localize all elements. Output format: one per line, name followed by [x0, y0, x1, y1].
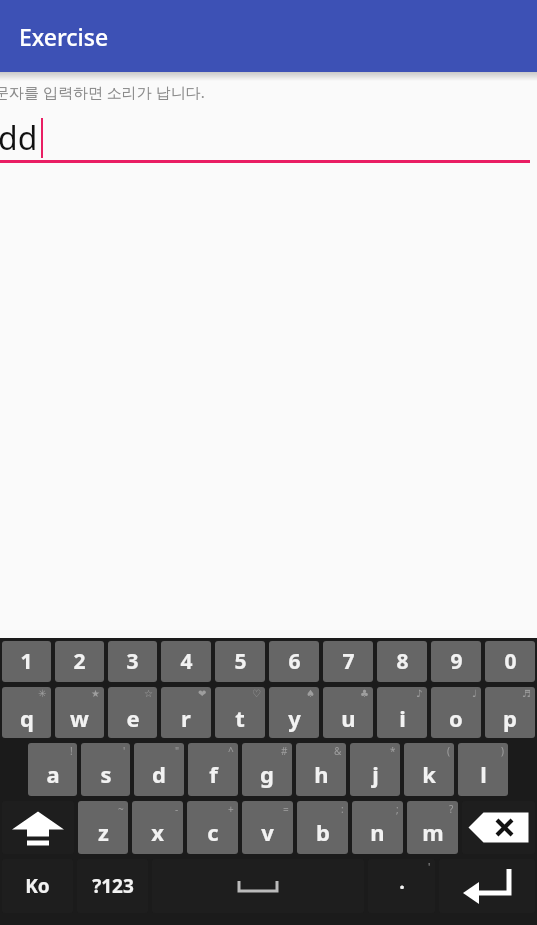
button[interactable]: i	[377, 687, 427, 738]
staticText: 0	[504, 647, 517, 676]
staticText: i	[399, 703, 406, 733]
staticText: g	[260, 759, 274, 789]
button[interactable]: ·	[368, 859, 435, 913]
staticText: w	[70, 703, 89, 733]
staticText: x	[151, 817, 164, 847]
button[interactable]: b	[297, 801, 348, 854]
button[interactable]: ?123	[77, 859, 148, 913]
staticText: ★	[91, 688, 100, 700]
staticText: o	[449, 703, 463, 733]
staticText: 2	[73, 647, 86, 676]
staticText: y	[288, 703, 301, 733]
button[interactable]: s	[81, 743, 130, 796]
button[interactable]: 5	[215, 641, 265, 682]
staticText: 문자를 입력하면 소리가 납니다.	[0, 82, 205, 102]
button[interactable]: Enter	[439, 859, 535, 913]
staticText: 6	[288, 647, 301, 676]
button[interactable]: q	[2, 687, 51, 738]
staticText: 1	[20, 647, 33, 676]
staticText: dd	[0, 116, 38, 160]
staticText: -	[175, 802, 179, 816]
staticText: 9	[450, 647, 463, 676]
staticText: +	[228, 802, 234, 816]
staticText: ^	[228, 744, 234, 758]
button[interactable]: Ko	[2, 859, 73, 913]
button[interactable]: 9	[431, 641, 481, 682]
button[interactable]: w	[55, 687, 104, 738]
staticText: #	[281, 744, 288, 758]
button[interactable]: v	[242, 801, 293, 854]
staticText: ♠	[306, 688, 315, 700]
staticText: (	[447, 744, 450, 758]
button[interactable]: j	[350, 743, 400, 796]
staticText: '	[123, 744, 126, 758]
button[interactable]: 6	[269, 641, 319, 682]
button[interactable]: p	[485, 687, 535, 738]
staticText: 3	[126, 647, 139, 676]
button[interactable]: 1	[2, 641, 51, 682]
staticText: q	[20, 703, 34, 733]
staticText: Exercise	[19, 21, 109, 52]
button[interactable]: t	[215, 687, 265, 738]
button[interactable]: z	[78, 801, 128, 854]
button[interactable]: k	[404, 743, 454, 796]
button[interactable]: 2	[55, 641, 104, 682]
staticText: ♬	[522, 688, 531, 700]
staticText: d	[152, 759, 166, 789]
button[interactable]: l	[458, 743, 508, 796]
button[interactable]: m	[407, 801, 458, 854]
staticText: 4	[180, 647, 193, 676]
button[interactable]: 8	[377, 641, 427, 682]
button[interactable]: d	[134, 743, 184, 796]
staticText: 7	[342, 647, 355, 676]
staticText: s	[100, 759, 112, 789]
staticText: l	[480, 759, 487, 789]
staticText: ♡	[252, 688, 261, 700]
button[interactable]: u	[323, 687, 373, 738]
button[interactable]: 3	[108, 641, 157, 682]
button[interactable]: Space	[152, 859, 364, 913]
staticText: ?123	[92, 873, 134, 899]
staticText: e	[126, 703, 140, 733]
staticText: v	[261, 817, 274, 847]
button[interactable]: y	[269, 687, 319, 738]
staticText: ✳	[38, 688, 47, 700]
button[interactable]: c	[187, 801, 238, 854]
button[interactable]: h	[296, 743, 346, 796]
staticText: ~	[118, 802, 124, 816]
staticText: ♪	[416, 688, 423, 700]
button[interactable]: 0	[485, 641, 535, 682]
staticText: Ko	[25, 873, 50, 899]
staticText: p	[503, 703, 517, 733]
staticText: j	[372, 759, 379, 789]
staticText: "	[175, 744, 180, 758]
button[interactable]: Backspace	[462, 801, 535, 854]
staticText: ♣	[360, 688, 369, 700]
staticText: :	[341, 802, 344, 816]
button[interactable]: f	[188, 743, 238, 796]
button[interactable]: 7	[323, 641, 373, 682]
staticText: k	[422, 759, 436, 789]
button[interactable]: r	[161, 687, 211, 738]
staticText: r	[181, 703, 191, 733]
staticText: ?	[449, 802, 454, 816]
button[interactable]: e	[108, 687, 157, 738]
staticText: u	[341, 703, 356, 733]
button[interactable]: dd	[0, 116, 537, 160]
staticText: ❤	[198, 688, 207, 700]
button[interactable]: 4	[161, 641, 211, 682]
staticText: 8	[396, 647, 409, 676]
button[interactable]: n	[352, 801, 403, 854]
button[interactable]: Shift	[2, 801, 74, 854]
staticText: ;	[396, 802, 399, 816]
staticText: n	[370, 817, 385, 847]
staticText: 5	[234, 647, 247, 676]
staticText: &	[334, 744, 342, 758]
staticText: !	[70, 744, 73, 758]
staticText: ☆	[144, 688, 153, 700]
button[interactable]: x	[132, 801, 183, 854]
button[interactable]: g	[242, 743, 292, 796]
button[interactable]: a	[28, 743, 77, 796]
button[interactable]: o	[431, 687, 481, 738]
staticText: '	[428, 860, 431, 874]
